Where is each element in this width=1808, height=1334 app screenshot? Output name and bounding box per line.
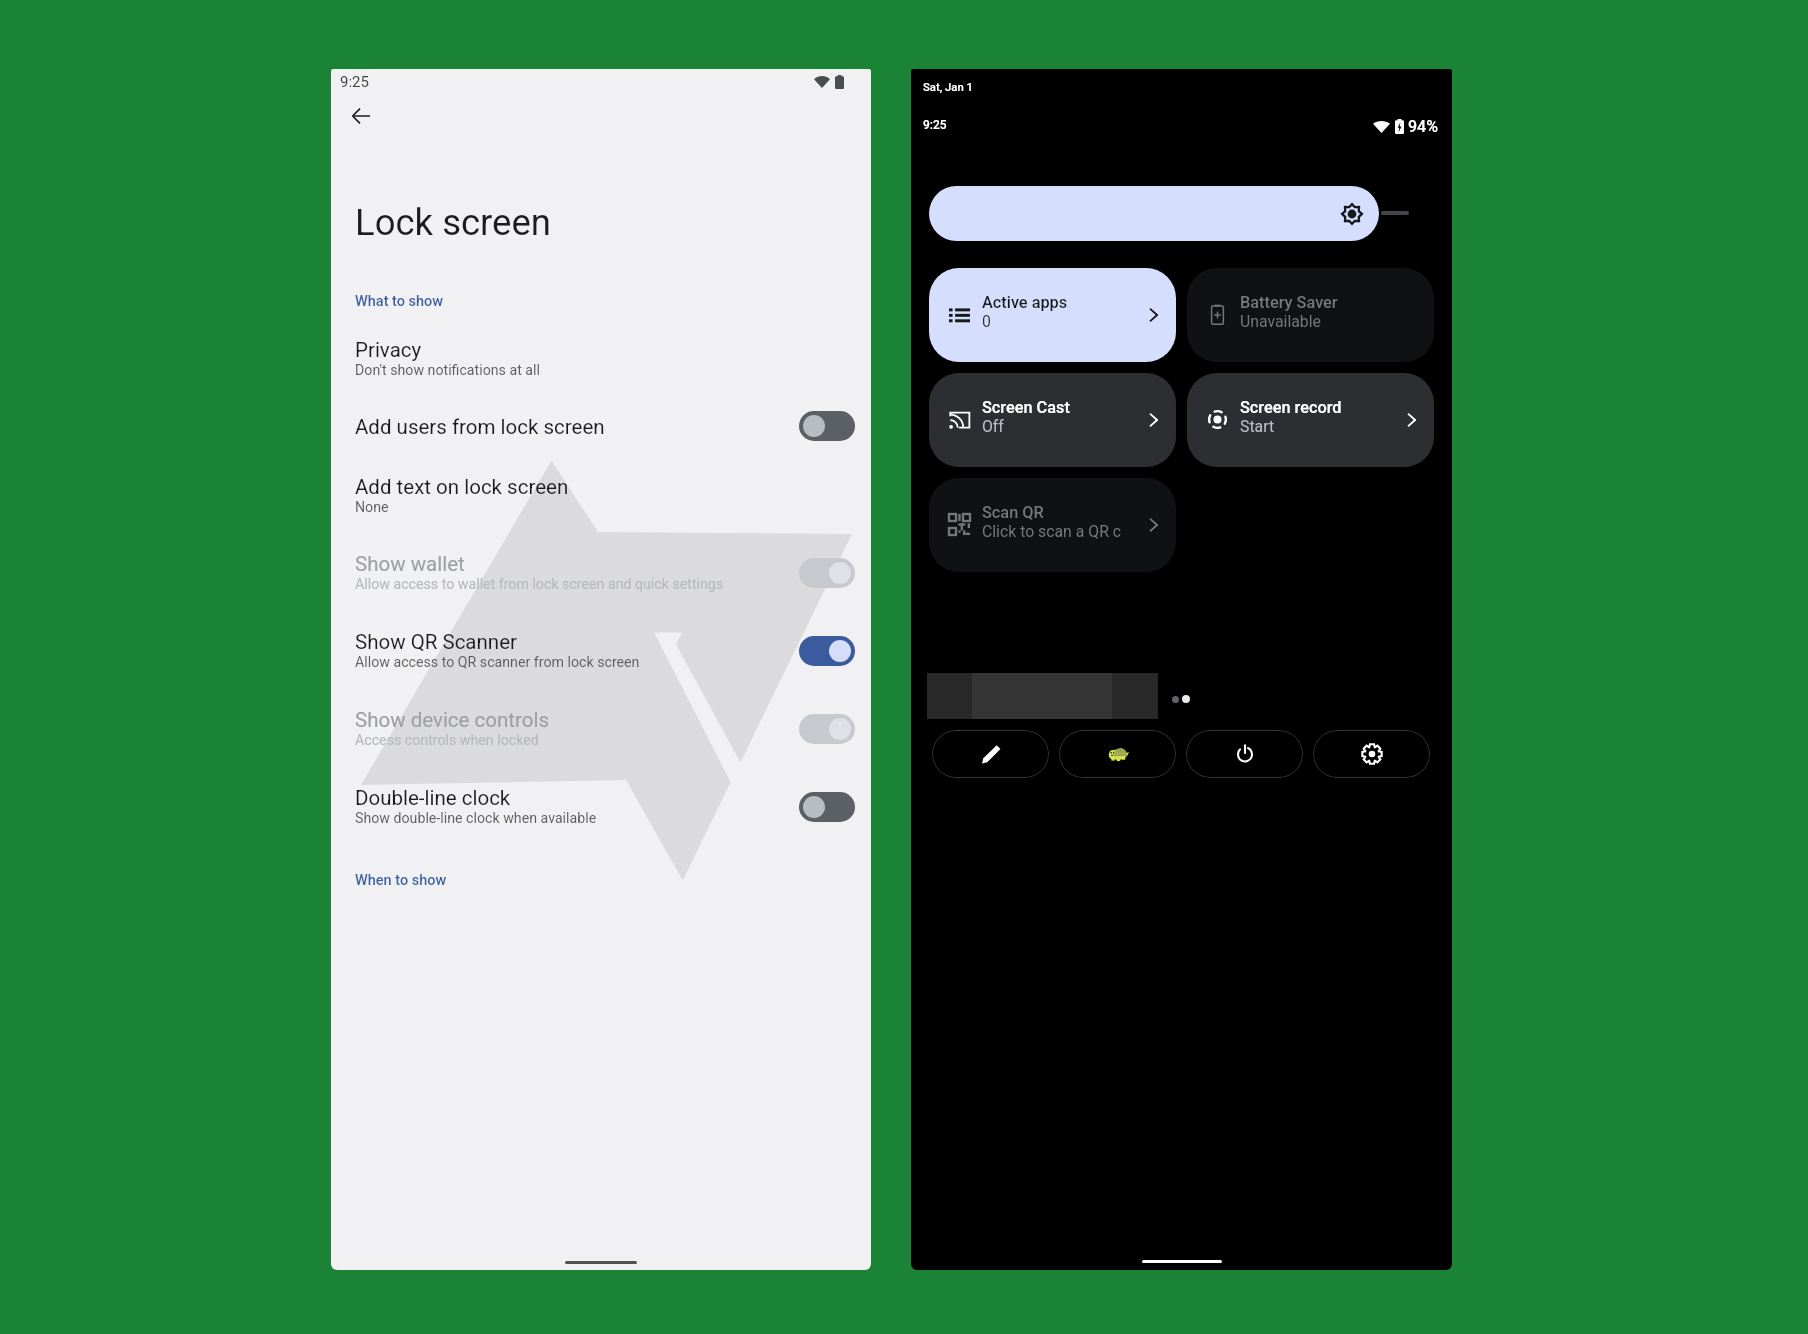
- button[interactable]: Brightness: [929, 186, 1379, 241]
- staticText: Start: [1240, 417, 1275, 436]
- button[interactable]: Toggle: [799, 792, 855, 822]
- button[interactable]: Edit: [932, 730, 1049, 778]
- staticText: Unavailable: [1240, 312, 1321, 331]
- staticText: 94%: [1408, 117, 1438, 136]
- button[interactable]: Show device controls: [331, 708, 871, 770]
- staticText: 9:25: [923, 118, 947, 132]
- button[interactable]: Back: [337, 92, 385, 140]
- staticText: Battery Saver: [1240, 293, 1338, 312]
- button[interactable]: Toggle: [799, 558, 855, 588]
- button[interactable]: Screen Cast: [929, 373, 1176, 467]
- button[interactable]: Power saver: [1059, 730, 1176, 778]
- staticText: Active apps: [982, 293, 1068, 312]
- button[interactable]: Add text on lock screen: [331, 475, 871, 537]
- staticText: Click to scan a QR c: [982, 522, 1122, 541]
- staticText: 0: [982, 312, 991, 331]
- staticText: Privacy: [355, 338, 422, 362]
- staticText: Allow access to wallet from lock screen …: [355, 576, 724, 593]
- staticText: Scan QR: [982, 503, 1044, 522]
- button[interactable]: Scan QR: [929, 478, 1176, 572]
- button[interactable]: Toggle: [799, 411, 855, 441]
- button[interactable]: Double-line clock: [331, 786, 871, 848]
- button[interactable]: Show wallet: [331, 552, 871, 614]
- staticText: Sat, Jan 1: [923, 81, 973, 94]
- staticText: Double-line clock: [355, 786, 511, 810]
- staticText: Show QR Scanner: [355, 630, 517, 654]
- staticText: Add users from lock screen: [355, 415, 605, 439]
- button[interactable]: Privacy: [331, 338, 871, 400]
- staticText: When to show: [355, 872, 447, 889]
- staticText: Lock screen: [355, 201, 551, 244]
- staticText: Screen record: [1240, 398, 1342, 417]
- staticText: Off: [982, 417, 1004, 436]
- staticText: None: [355, 499, 389, 516]
- staticText: Don't show notifications at all: [355, 362, 540, 379]
- button[interactable]: Screen record: [1187, 373, 1434, 467]
- staticText: Add text on lock screen: [355, 475, 569, 499]
- button[interactable]: Power: [1186, 730, 1303, 778]
- staticText: Screen Cast: [982, 398, 1070, 417]
- staticText: Access controls when locked: [355, 732, 539, 749]
- staticText: Show device controls: [355, 708, 549, 732]
- button[interactable]: Active apps: [929, 268, 1176, 362]
- button[interactable]: Toggle: [799, 714, 855, 744]
- button[interactable]: Add users from lock screen: [331, 415, 871, 455]
- staticText: 9:25: [340, 73, 369, 91]
- staticText: What to show: [355, 293, 444, 310]
- staticText: Allow access to QR scanner from lock scr…: [355, 654, 640, 671]
- button[interactable]: Settings: [1313, 730, 1430, 778]
- button[interactable]: Show QR Scanner: [331, 630, 871, 692]
- staticText: Show wallet: [355, 552, 465, 576]
- staticText: Show double-line clock when available: [355, 810, 597, 827]
- button[interactable]: Battery Saver: [1187, 268, 1434, 362]
- button[interactable]: Toggle: [799, 636, 855, 666]
